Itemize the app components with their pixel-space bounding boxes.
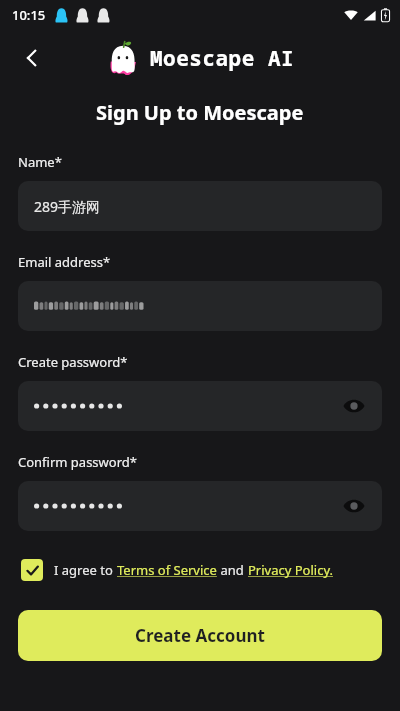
button[interactable]: Show password (336, 488, 372, 524)
button[interactable]: I agree checkbox (18, 556, 46, 584)
staticText: Email address* (18, 253, 111, 271)
button[interactable]: Show password (18, 381, 382, 431)
staticText: Create Account (135, 624, 265, 647)
staticText: and (217, 561, 248, 579)
staticText: Privacy Policy. (248, 561, 334, 579)
button[interactable]: Show password (18, 481, 382, 531)
button[interactable]: Privacy Policy. (248, 561, 334, 579)
staticText: Terms of Service (117, 561, 217, 579)
button[interactable]: 289手游网 (18, 181, 382, 231)
staticText: Moescape AI (150, 44, 295, 73)
staticText: Name* (18, 153, 62, 171)
staticText: Confirm password* (18, 453, 137, 471)
button[interactable]: Create Account (18, 610, 382, 661)
staticText: I agree to (54, 561, 117, 579)
button[interactable]: Terms of Service (117, 561, 217, 579)
staticText: 10:15 (12, 6, 46, 24)
button[interactable]: Back (10, 36, 54, 80)
staticText: 289手游网 (34, 197, 101, 216)
staticText: Create password* (18, 353, 128, 371)
button[interactable] (18, 281, 382, 331)
staticText: Sign Up to Moescape (96, 99, 304, 126)
button[interactable]: Show password (336, 388, 372, 424)
